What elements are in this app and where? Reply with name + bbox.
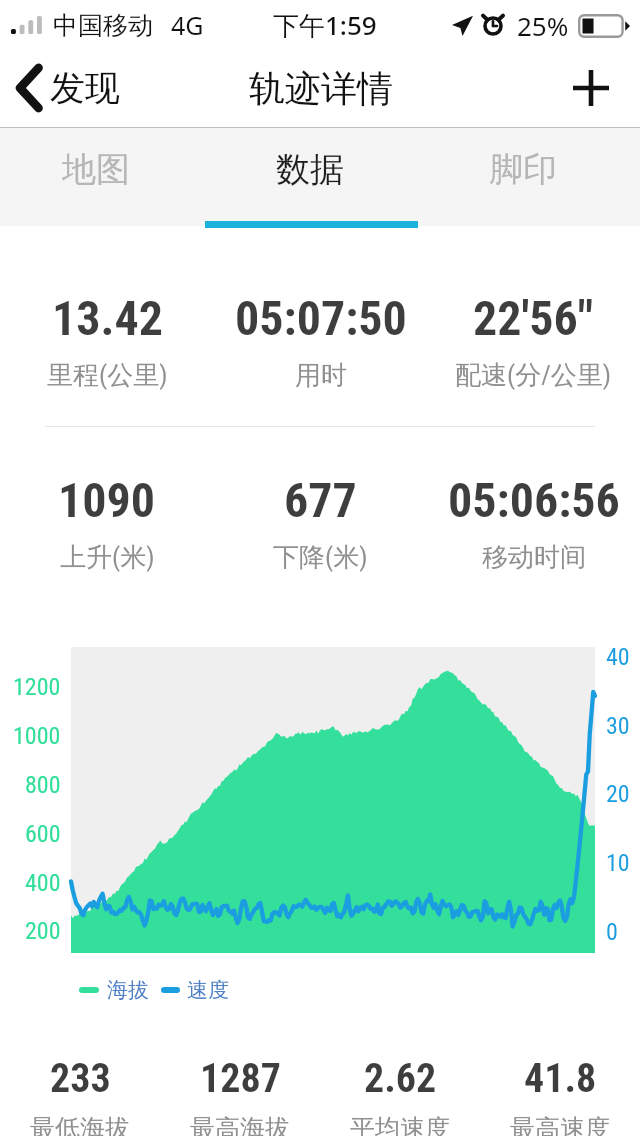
staticText: 地图 <box>62 148 130 191</box>
staticText: 22'56" <box>473 290 594 346</box>
staticText: 里程(公里) <box>47 359 168 392</box>
staticText: 25% <box>517 8 569 43</box>
staticText: 脚印 <box>489 148 557 191</box>
staticText: 速度 <box>187 977 229 1003</box>
staticText: 4G <box>171 8 204 42</box>
staticText: 用时 <box>295 359 347 392</box>
staticText: 05:06:56 <box>448 472 620 528</box>
staticText: 中国移动 <box>53 10 153 41</box>
staticText: 0 <box>606 918 618 946</box>
staticText: 677 <box>284 472 357 528</box>
staticText: 轨迹详情 <box>249 66 393 111</box>
staticText: 41.8 <box>524 1055 597 1102</box>
staticText: 1090 <box>58 472 156 528</box>
staticText: 400 <box>25 869 61 897</box>
staticText: 800 <box>25 771 61 799</box>
staticText: 2.62 <box>364 1055 437 1102</box>
button[interactable]: 地图 <box>0 128 214 226</box>
staticText: 平均速度 <box>350 1113 450 1136</box>
staticText: 最高海拔 <box>190 1113 290 1136</box>
staticText: 13.42 <box>52 290 163 346</box>
button[interactable]: 数据 <box>214 128 427 226</box>
staticText: 1000 <box>13 722 61 750</box>
staticText: 1200 <box>13 673 61 701</box>
staticText: 30 <box>606 712 630 740</box>
staticText: 最高速度 <box>510 1113 610 1136</box>
button[interactable]: 脚印 <box>427 128 640 226</box>
staticText: 600 <box>25 820 61 848</box>
staticText: 1287 <box>200 1055 281 1102</box>
button[interactable]: Add <box>556 53 640 123</box>
staticText: 05:07:50 <box>235 290 407 346</box>
staticText: 最低海拔 <box>30 1113 130 1136</box>
staticText: 下降(米) <box>273 541 368 574</box>
staticText: 233 <box>50 1055 111 1102</box>
staticText: 下午1:59 <box>273 7 377 43</box>
staticText: 200 <box>25 917 61 945</box>
staticText: 海拔 <box>107 977 149 1003</box>
button[interactable]: 发现 <box>0 53 130 123</box>
staticText: 20 <box>606 780 630 808</box>
staticText: 配速(分/公里) <box>455 359 612 392</box>
staticText: 40 <box>606 643 630 671</box>
staticText: 10 <box>606 849 630 877</box>
staticText: 移动时间 <box>482 541 586 574</box>
staticText: 上升(米) <box>60 541 155 574</box>
staticText: 发现 <box>50 66 120 110</box>
staticText: 数据 <box>276 148 344 191</box>
